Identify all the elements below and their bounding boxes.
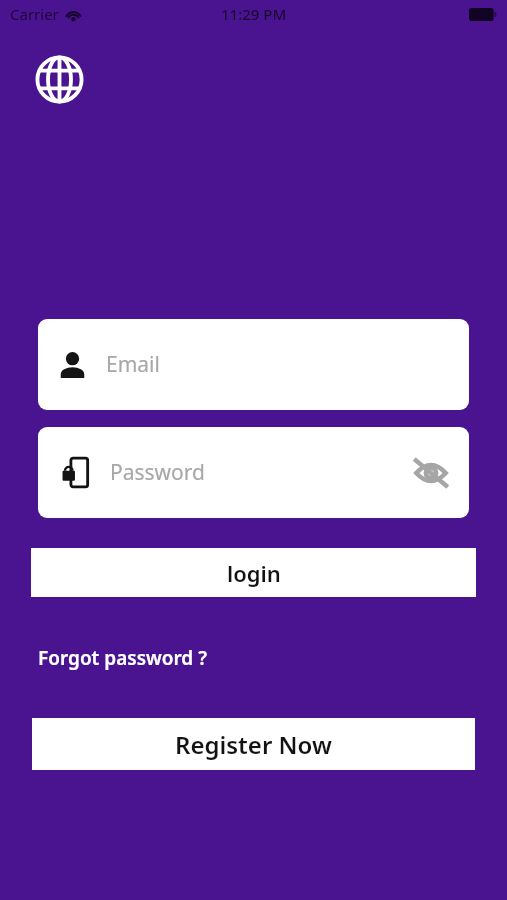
button[interactable]: Show password <box>411 453 451 493</box>
staticText: Forgot password ? <box>38 645 207 671</box>
staticText: Email <box>106 350 160 379</box>
staticText: Password <box>110 458 411 487</box>
button[interactable]: Change language <box>34 54 84 104</box>
button[interactable]: Register Now <box>32 718 475 770</box>
staticText: 11:29 PM <box>221 4 287 24</box>
button[interactable]: Forgot password ? <box>38 641 207 675</box>
button[interactable]: login <box>31 548 476 597</box>
staticText: login <box>227 558 281 588</box>
staticText: Register Now <box>175 728 332 761</box>
staticText: Carrier <box>10 4 59 24</box>
button[interactable]: Password <box>38 427 469 518</box>
button[interactable]: Email <box>38 319 469 410</box>
